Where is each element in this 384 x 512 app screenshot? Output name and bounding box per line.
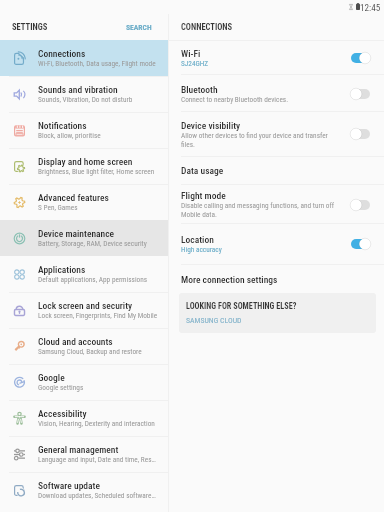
staticText: Wi-Fi, Bluetooth, Data usage, Flight mod… — [38, 59, 156, 68]
staticText: Brightness, Blue light filter, Home scre… — [38, 167, 155, 176]
button[interactable]: Flight mode — [169, 185, 384, 224]
staticText: CONNECTIONS — [181, 22, 233, 32]
staticText: Default applications, App permissions — [38, 275, 148, 284]
staticText: SAMSUNG CLOUD — [186, 316, 242, 325]
button[interactable]: Sounds and vibration — [0, 76, 168, 112]
staticText: SJ24GHZ — [181, 59, 209, 68]
staticText: LOOKING FOR SOMETHING ELSE? — [186, 301, 297, 311]
staticText: Lock screen, Fingerprints, Find My Mobil… — [38, 311, 158, 320]
staticText: SETTINGS — [12, 22, 48, 32]
button[interactable]: Connections — [0, 40, 168, 76]
staticText: Applications — [38, 264, 86, 275]
staticText: Device visibility — [181, 120, 241, 131]
staticText: Bluetooth — [181, 84, 218, 95]
button[interactable]: Notifications — [0, 112, 168, 148]
button[interactable]: Data usage — [169, 157, 384, 184]
staticText: Google — [38, 372, 65, 383]
button[interactable]: Applications — [0, 256, 168, 292]
staticText: Disable calling and messaging functions,… — [181, 201, 340, 219]
staticText: Software update — [38, 480, 100, 491]
staticText: Accessibility — [38, 408, 87, 419]
staticText: Battery, Storage, RAM, Device security — [38, 239, 147, 248]
button[interactable]: Google — [0, 364, 168, 400]
button[interactable]: Cloud and accounts — [0, 328, 168, 364]
button[interactable]: More connection settings — [169, 265, 384, 293]
staticText: Block, allow, prioritise — [38, 131, 101, 140]
staticText: Flight mode — [181, 190, 226, 201]
staticText: Language and input, Date and time, Res… — [38, 455, 156, 464]
staticText: Samsung Cloud, Backup and restore — [38, 347, 142, 356]
button[interactable]: Advanced features — [0, 184, 168, 220]
button[interactable]: Device visibility — [169, 112, 384, 156]
button[interactable]: Location — [169, 224, 384, 263]
button[interactable]: General management — [0, 436, 168, 472]
staticText: 12:45 — [360, 2, 381, 13]
button[interactable]: Accessibility — [0, 400, 168, 436]
staticText: General management — [38, 444, 119, 455]
staticText: Display and home screen — [38, 156, 133, 167]
button[interactable]: Display and home screen — [0, 148, 168, 184]
staticText: Allow other devices to find your device … — [181, 131, 340, 149]
staticText: SEARCH — [126, 23, 152, 32]
button[interactable]: SEARCH — [126, 23, 152, 32]
staticText: Wi-Fi — [181, 48, 201, 59]
staticText: Connect to nearby Bluetooth devices. — [181, 95, 289, 104]
staticText: Device maintenance — [38, 228, 115, 239]
staticText: Connections — [38, 48, 86, 59]
staticText: Cloud and accounts — [38, 336, 113, 347]
staticText: More connection settings — [181, 274, 278, 285]
staticText: Lock screen and security — [38, 300, 133, 311]
button[interactable]: LOOKING FOR SOMETHING ELSE? — [179, 293, 376, 333]
staticText: S Pen, Games — [38, 203, 78, 212]
staticText: Sounds, Vibration, Do not disturb — [38, 95, 133, 104]
staticText: Notifications — [38, 120, 87, 131]
button[interactable]: Software update — [0, 472, 168, 508]
button[interactable]: Device maintenance — [0, 220, 168, 256]
button[interactable]: Lock screen and security — [0, 292, 168, 328]
button[interactable]: Bluetooth — [169, 75, 384, 112]
staticText: Download updates, Scheduled software… — [38, 491, 156, 500]
staticText: Advanced features — [38, 192, 109, 203]
staticText: Location — [181, 234, 214, 245]
button[interactable]: Wi-Fi — [169, 41, 384, 74]
staticText: Data usage — [181, 165, 224, 176]
staticText: Sounds and vibration — [38, 84, 118, 95]
staticText: Google settings — [38, 383, 84, 392]
staticText: Vision, Hearing, Dexterity and interacti… — [38, 419, 155, 428]
staticText: High accuracy — [181, 245, 222, 254]
